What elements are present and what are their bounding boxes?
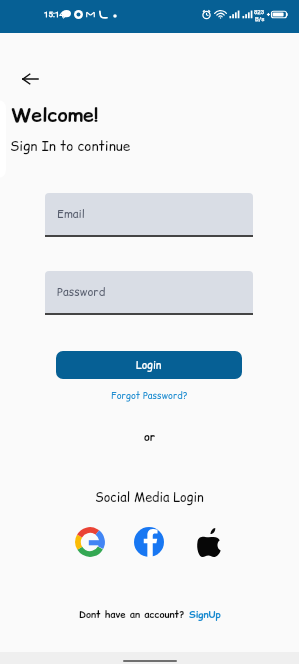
staticText: Welcome! [11,101,99,128]
staticText: 823 [254,8,265,15]
staticText: or [144,429,156,444]
button[interactable]: Sign in with Facebook [134,527,164,557]
staticText: Password [57,284,106,300]
staticText: Sign In to continue [10,137,131,156]
button[interactable]: Email [45,193,253,235]
staticText: SignUp [189,608,221,621]
button[interactable]: Sign in with Google [75,527,105,557]
button[interactable]: Forgot Password? [111,389,188,402]
staticText: Dont have an account? [79,608,185,621]
staticText: Email [57,206,85,222]
button[interactable]: Back [14,63,46,95]
button[interactable]: Sign in with Apple [195,527,225,557]
staticText: Login [136,358,162,373]
button[interactable]: SignUp [189,608,221,621]
staticText: B/s [255,15,265,22]
staticText: Forgot Password? [111,389,188,402]
button[interactable]: Login [56,351,242,379]
button[interactable]: Password [45,271,253,313]
staticText: 15:14 [44,10,64,19]
staticText: Social Media Login [95,489,204,507]
